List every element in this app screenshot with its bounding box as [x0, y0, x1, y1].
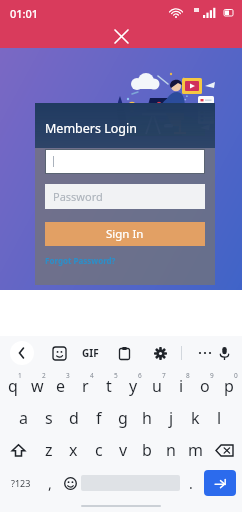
button[interactable]: z [36, 434, 61, 466]
button[interactable]: Close [107, 22, 135, 50]
staticText: y [129, 375, 138, 397]
staticText: r [82, 375, 89, 397]
button[interactable]: More options [194, 342, 216, 364]
button[interactable]: k [183, 402, 207, 434]
button[interactable]: Sign In [45, 222, 205, 246]
staticText: Sign In [106, 226, 144, 242]
button[interactable]: Settings [149, 342, 171, 364]
staticText: z [45, 439, 53, 461]
button[interactable]: j [159, 402, 183, 434]
button[interactable]: b [135, 434, 159, 466]
staticText: e [56, 375, 66, 397]
staticText: m [188, 439, 203, 461]
button[interactable]: Emoji [60, 466, 81, 500]
button[interactable]: s [36, 402, 61, 434]
button[interactable]: t [97, 370, 121, 402]
button[interactable]: f [86, 402, 111, 434]
staticText: h [142, 407, 152, 429]
button[interactable]: ?123 [3, 466, 39, 500]
button[interactable]: Shift [1, 434, 36, 466]
button[interactable]: y [121, 370, 145, 402]
staticText: 9 [210, 371, 214, 380]
staticText: 3 [66, 371, 70, 380]
staticText: w [31, 375, 44, 397]
staticText: ?123 [11, 477, 31, 489]
staticText: 8 [186, 371, 190, 380]
button[interactable]: l [207, 402, 231, 434]
staticText: q [8, 375, 18, 397]
staticText: 2 [42, 371, 46, 380]
button[interactable]: m [183, 434, 207, 466]
staticText: 4 [90, 371, 94, 380]
staticText: t [106, 375, 112, 397]
button[interactable]: a [11, 402, 36, 434]
staticText: Forgot Password? [45, 255, 116, 266]
staticText: 5 [114, 371, 118, 380]
staticText: d [69, 407, 79, 429]
staticText: b [142, 439, 152, 461]
button[interactable]: g [111, 402, 135, 434]
button[interactable]: Clipboard [113, 342, 135, 364]
staticText: Members Login [45, 120, 137, 137]
staticText: x [69, 439, 78, 461]
button[interactable]: Enter [204, 470, 236, 496]
button[interactable]: n [159, 434, 183, 466]
button[interactable]: p [217, 370, 241, 402]
staticText: Password [53, 189, 103, 204]
button[interactable]: h [135, 402, 159, 434]
staticText: 6 [138, 371, 142, 380]
button[interactable]: i [169, 370, 193, 402]
button[interactable]: GIF [82, 346, 99, 360]
staticText: n [166, 439, 176, 461]
staticText: u [152, 375, 162, 397]
staticText: a [19, 407, 28, 429]
staticText: c [95, 439, 103, 461]
button[interactable]: v [111, 434, 135, 466]
button[interactable]: w [25, 370, 49, 402]
button[interactable] [45, 149, 205, 174]
staticText: 1 [18, 371, 22, 380]
button[interactable]: c [86, 434, 111, 466]
staticText: 7 [162, 371, 166, 380]
button[interactable]: r [73, 370, 97, 402]
staticText: g [118, 407, 128, 429]
button[interactable]: Back [10, 341, 34, 365]
button[interactable]: o [193, 370, 217, 402]
button[interactable]: d [61, 402, 86, 434]
staticText: p [224, 375, 234, 397]
staticText: j [169, 407, 174, 429]
staticText: k [191, 407, 200, 429]
button[interactable]: . [180, 466, 201, 500]
staticText: i [179, 375, 184, 397]
button[interactable]: Stickers [48, 342, 70, 364]
button[interactable]: , [39, 466, 60, 500]
staticText: 01:01 [10, 6, 39, 21]
staticText: f [96, 407, 102, 429]
button[interactable]: x [61, 434, 86, 466]
staticText: v [119, 439, 128, 461]
button[interactable]: u [145, 370, 169, 402]
staticText: GIF [82, 346, 99, 360]
staticText: s [45, 407, 53, 429]
button[interactable]: e [49, 370, 73, 402]
staticText: l [217, 407, 222, 429]
staticText: 0 [234, 371, 238, 380]
staticText: o [200, 375, 210, 397]
staticText: , [48, 474, 52, 493]
button[interactable]: q [1, 370, 25, 402]
staticText: . [189, 474, 193, 493]
button[interactable]: Voice input [216, 342, 232, 364]
button[interactable]: Backspace [207, 434, 241, 466]
button[interactable]: Password [45, 184, 205, 209]
button[interactable]: Forgot Password? [45, 255, 116, 266]
